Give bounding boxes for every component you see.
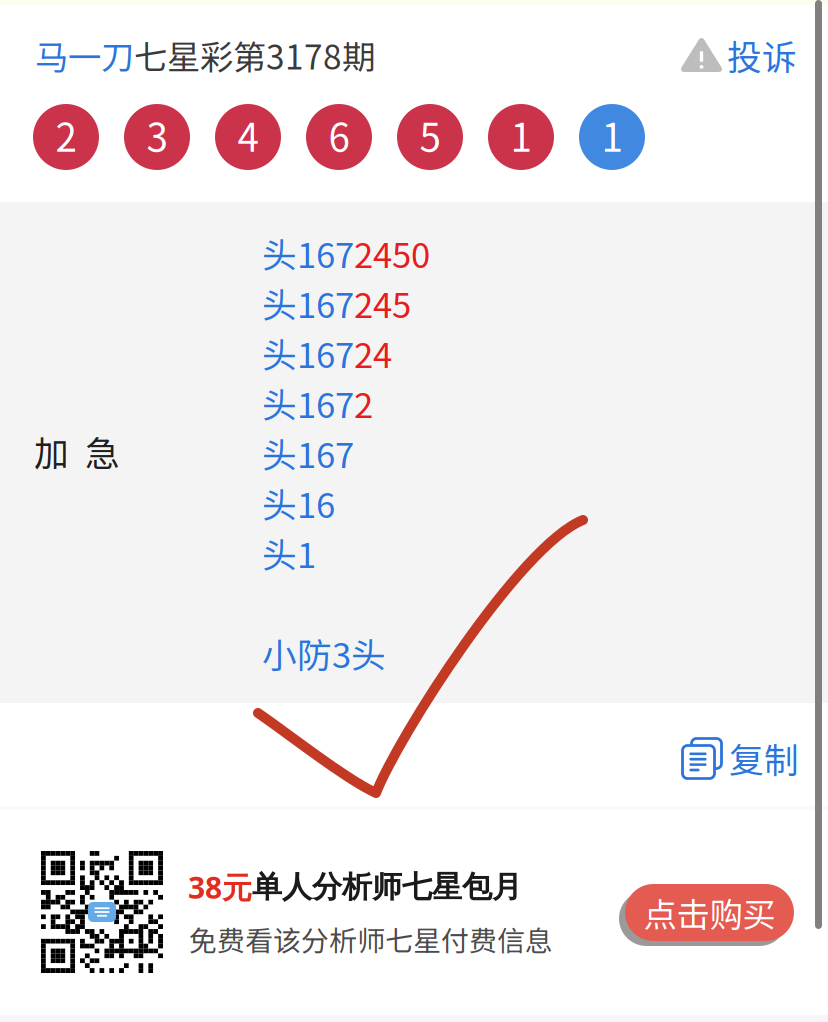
staticText: 单人分析师七星包月 — [252, 868, 522, 906]
staticText: 头167 — [262, 328, 354, 378]
staticText: 38元 — [188, 867, 252, 907]
staticText: 4 — [237, 107, 258, 163]
staticText: 头167 — [262, 428, 354, 478]
button[interactable]: 投诉 — [681, 34, 797, 76]
staticText: 复制 — [729, 733, 799, 783]
staticText: 头1 — [262, 528, 316, 578]
staticText: 头167 — [262, 278, 354, 328]
staticText: 头16 — [262, 478, 335, 528]
staticText: 5 — [419, 107, 440, 163]
staticText: 马一刀 — [35, 31, 134, 79]
staticText: 1 — [601, 107, 622, 163]
staticText: 2 — [55, 107, 76, 163]
staticText: 24 — [354, 328, 392, 378]
staticText: 头167 — [262, 378, 354, 428]
staticText: 投诉 — [727, 30, 797, 80]
staticText: 免费看该分析师七星付费信息 — [189, 919, 553, 959]
staticText: 加 急 — [34, 426, 120, 476]
button[interactable]: 点击购买 — [619, 884, 794, 946]
staticText: 6 — [328, 107, 349, 163]
staticText: 245 — [354, 278, 411, 328]
staticText: 七星彩第3178期 — [134, 31, 375, 79]
staticText: 2450 — [354, 228, 430, 278]
staticText: 2 — [354, 378, 373, 428]
staticText: 3 — [146, 107, 167, 163]
button[interactable]: 复制 — [682, 736, 799, 780]
staticText: 头167 — [262, 228, 354, 278]
staticText: 点击购买 — [643, 888, 775, 937]
staticText: 小防3头 — [262, 628, 386, 678]
staticText: 1 — [510, 107, 531, 163]
